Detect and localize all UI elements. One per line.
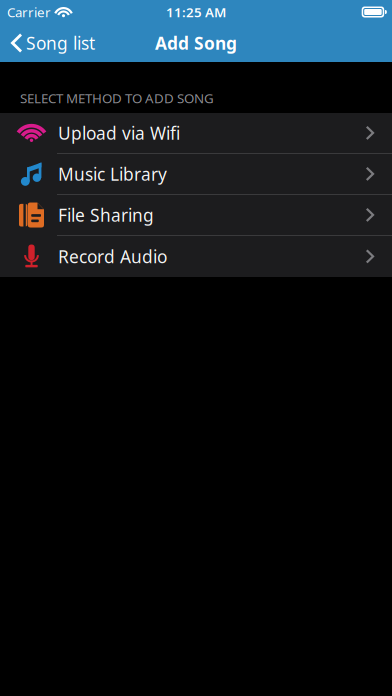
staticText: File Sharing	[58, 203, 154, 226]
button[interactable]: Upload via Wifi	[0, 113, 392, 154]
staticText: Record Audio	[58, 245, 167, 268]
staticText: Song list	[26, 31, 95, 54]
staticText: Music Library	[58, 162, 167, 185]
staticText: 11:25 AM	[166, 3, 226, 21]
staticText: SELECT METHOD TO ADD SONG	[20, 89, 214, 107]
button[interactable]: Music Library	[0, 154, 392, 195]
button[interactable]: Song list	[0, 24, 95, 62]
staticText: Upload via Wifi	[58, 121, 180, 144]
button[interactable]: Record Audio	[0, 236, 392, 277]
button[interactable]: File Sharing	[0, 195, 392, 236]
staticText: Add Song	[155, 31, 237, 54]
staticText: Carrier	[7, 3, 51, 21]
